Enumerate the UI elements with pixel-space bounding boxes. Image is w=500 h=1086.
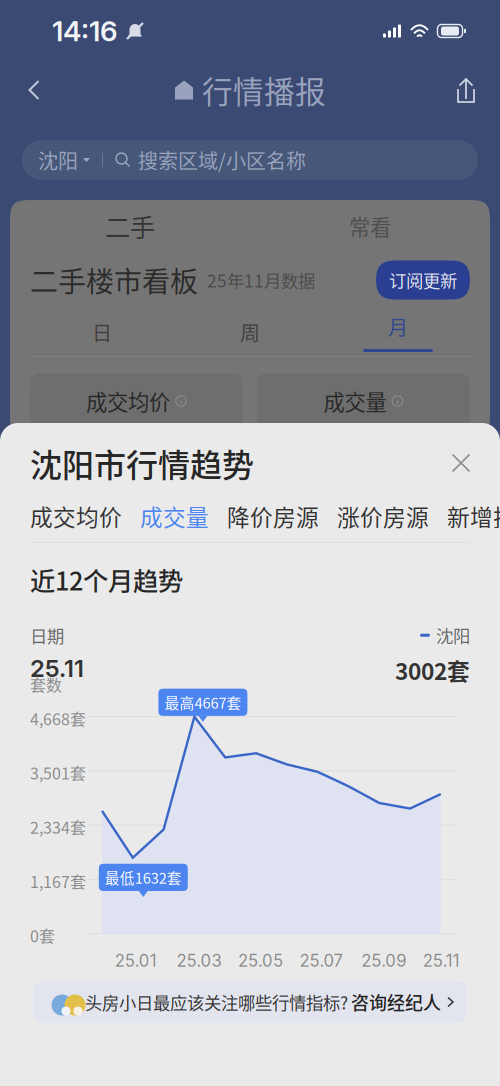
staticText: 3,501套 [30,761,86,784]
staticText: 沈阳 [38,145,78,174]
staticText: 套数 [30,673,62,696]
staticText: 25.09 [361,951,406,971]
staticText: 25.07 [300,951,343,971]
button[interactable]: 返回 [12,68,56,112]
staticText: 1,167套 [30,869,86,893]
staticText: 头房小日最应该关注哪些行情指标? [85,989,348,1015]
staticText: 降价房源 [227,500,319,532]
staticText: 25.01 [115,951,157,971]
staticText: 沈阳市行情趋势 [30,440,254,486]
staticText: 4,668套 [30,707,86,730]
staticText: 常看 [349,211,391,241]
staticText: 3002套 [395,654,470,687]
staticText: 订阅更新 [389,267,457,293]
staticText: 二手楼市看板 [30,260,198,300]
staticText: 14:16 [52,14,118,48]
staticText: 咨询经纪人 [351,989,441,1015]
staticText: 近12个月趋势 [30,561,183,598]
staticText: 成交量 [323,386,386,416]
button[interactable]: 沈阳 [0,140,500,180]
staticText: 月 [388,312,408,341]
staticText: 2,334套 [30,815,86,838]
button[interactable]: 涨价房源 [337,500,429,532]
staticText: 成交均价 [86,386,170,416]
staticText: 新增挂 [447,500,500,532]
staticText: 涨价房源 [337,500,429,532]
button[interactable]: 降价房源 [227,500,319,532]
staticText: 行情播报 [202,68,326,112]
staticText: 0套 [30,924,55,947]
staticText: 二手 [105,208,155,244]
staticText: 日 [92,317,112,346]
button[interactable]: 新增挂 [447,500,500,532]
staticText: 成交量 [140,500,209,532]
staticText: 日期 [30,623,64,648]
staticText: 25.11 [423,951,460,971]
staticText: 25.03 [176,951,221,971]
staticText: 沈阳 [436,623,470,648]
staticText: 周 [240,317,260,346]
staticText: 25.05 [238,951,283,971]
staticText: 25年11月数据 [207,267,315,293]
button[interactable]: 关闭 [444,446,478,480]
button[interactable]: 成交均价 [30,500,122,532]
button[interactable]: 成交量 [140,500,209,532]
staticText: 搜索区域/小区名称 [138,145,306,174]
button[interactable]: 头房小日最应该关注哪些行情指标? [0,981,500,1023]
staticText: 成交均价 [30,500,122,532]
staticText: 最低1632套 [105,867,182,888]
staticText: 25.11 [30,654,84,683]
staticText: 最高4667套 [164,692,241,713]
button[interactable]: 分享 [444,68,488,112]
